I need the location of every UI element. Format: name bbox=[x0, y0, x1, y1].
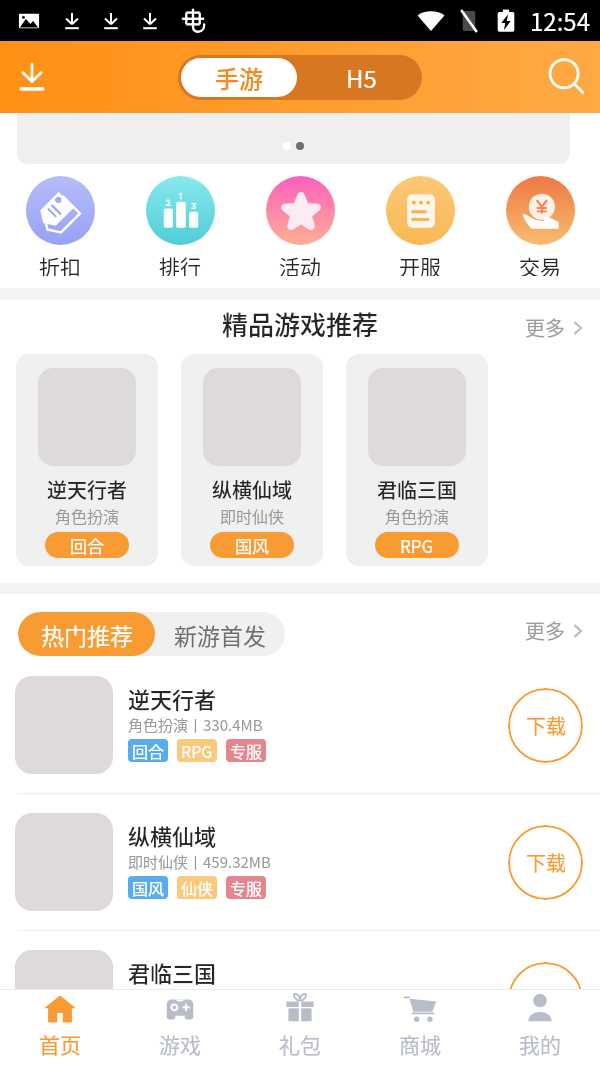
staticText: 角色扮演 bbox=[55, 504, 120, 527]
staticText: 手游 bbox=[215, 60, 263, 95]
button[interactable]: 逆天行者 bbox=[0, 657, 600, 793]
button[interactable] bbox=[17, 113, 570, 164]
staticText: 即时仙侠丨459.32MB bbox=[128, 851, 271, 873]
staticText: 折扣 bbox=[39, 251, 81, 276]
staticText: 君临三国 bbox=[128, 956, 217, 988]
button[interactable]: 我的 bbox=[480, 989, 600, 1067]
staticText: 开服 bbox=[399, 251, 441, 276]
button[interactable]: 君临三国 bbox=[0, 931, 600, 1067]
button[interactable]: 君临三国 bbox=[346, 354, 488, 566]
button[interactable]: 热门推荐 bbox=[18, 612, 155, 656]
staticText: 礼包 bbox=[279, 1029, 321, 1059]
button[interactable]: 更多 bbox=[525, 616, 587, 645]
button[interactable]: 下载 bbox=[508, 688, 583, 763]
button[interactable]: Downloads bbox=[6, 51, 58, 103]
staticText: 回合 bbox=[132, 739, 165, 762]
button[interactable]: Search bbox=[541, 51, 593, 103]
staticText: 国风 bbox=[235, 533, 269, 558]
button[interactable]: 下载 bbox=[508, 825, 583, 900]
staticText: RPG bbox=[181, 739, 213, 762]
button[interactable]: 游戏 bbox=[120, 989, 240, 1067]
staticText: 专服 bbox=[230, 739, 263, 762]
button[interactable]: 活动 bbox=[245, 176, 355, 276]
staticText: 纵横仙域 bbox=[212, 475, 292, 504]
staticText: 角色扮演丨330.4MB bbox=[128, 714, 263, 736]
staticText: H5 bbox=[346, 60, 377, 95]
staticText: 更多 bbox=[525, 313, 565, 342]
staticText: 君临三国 bbox=[377, 475, 457, 504]
staticText: 纵横仙域 bbox=[128, 819, 217, 851]
button[interactable]: H5 bbox=[300, 55, 422, 100]
staticText: 专服 bbox=[230, 876, 263, 899]
staticText: 更多 bbox=[525, 616, 565, 645]
staticText: 仙侠 bbox=[181, 876, 214, 899]
button[interactable]: 下载 bbox=[508, 962, 583, 1037]
button[interactable]: 逆天行者 bbox=[16, 354, 158, 566]
button[interactable]: 纵横仙域 bbox=[181, 354, 323, 566]
staticText: 下载 bbox=[526, 848, 566, 877]
staticText: 下载 bbox=[526, 711, 566, 740]
staticText: 逆天行者 bbox=[128, 682, 217, 714]
staticText: 角色扮演 bbox=[385, 504, 450, 527]
staticText: RPG bbox=[181, 1013, 213, 1036]
staticText: 热门推荐 bbox=[41, 618, 133, 651]
staticText: 逆天行者 bbox=[47, 475, 127, 504]
staticText: 活动 bbox=[279, 251, 321, 276]
button[interactable]: 手游 bbox=[181, 58, 297, 97]
staticText: 回合 bbox=[70, 533, 104, 558]
button[interactable]: 交易 bbox=[485, 176, 595, 276]
staticText: 我的 bbox=[519, 1029, 561, 1059]
button[interactable]: 商城 bbox=[360, 989, 480, 1067]
staticText: 精品游戏推荐 bbox=[222, 305, 379, 343]
button[interactable]: 礼包 bbox=[240, 989, 360, 1067]
staticText: 12:54 bbox=[530, 3, 590, 38]
staticText: 角色扮演丨520.1MB bbox=[128, 988, 263, 1010]
button[interactable]: 折扣 bbox=[5, 176, 115, 276]
button[interactable]: 纵横仙域 bbox=[0, 794, 600, 930]
staticText: 新游首发 bbox=[174, 618, 266, 651]
staticText: 商城 bbox=[399, 1029, 441, 1059]
button[interactable]: 排行 bbox=[125, 176, 235, 276]
staticText: 即时仙侠 bbox=[220, 504, 285, 527]
staticText: 下载 bbox=[526, 985, 566, 1014]
staticText: 首页 bbox=[39, 1029, 81, 1059]
button[interactable]: 开服 bbox=[365, 176, 475, 276]
button[interactable]: 更多 bbox=[525, 313, 587, 342]
button[interactable]: 首页 bbox=[0, 989, 120, 1067]
staticText: 国风 bbox=[132, 876, 165, 899]
staticText: 排行 bbox=[159, 251, 201, 276]
button[interactable]: 新游首发 bbox=[155, 612, 285, 656]
staticText: 交易 bbox=[519, 251, 561, 276]
staticText: RPG bbox=[400, 533, 434, 558]
staticText: 游戏 bbox=[159, 1029, 201, 1059]
